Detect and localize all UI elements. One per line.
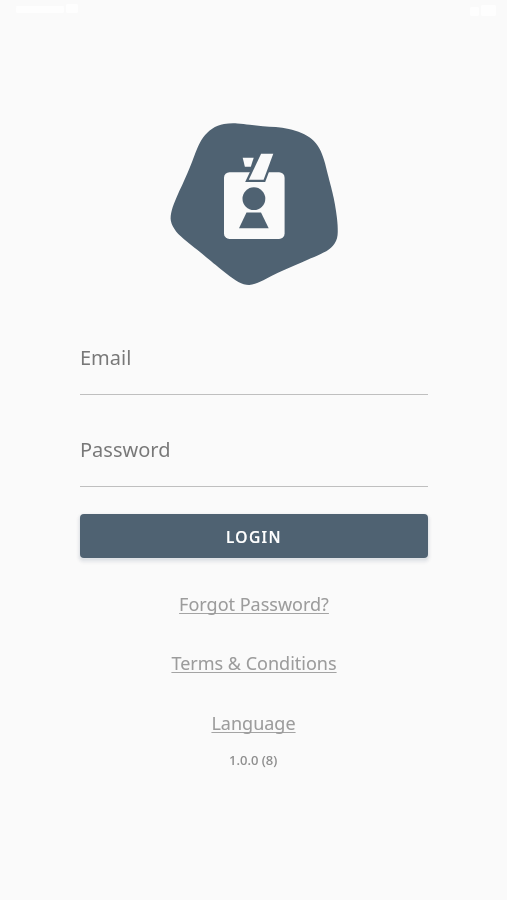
- staticText: 1.0.0 (8): [229, 751, 278, 769]
- button[interactable]: Language: [205, 708, 302, 739]
- staticText: LOGIN: [226, 526, 282, 547]
- button[interactable]: Forgot Password?: [173, 589, 335, 620]
- button[interactable]: LOGIN: [80, 514, 428, 558]
- staticText: Password: [80, 436, 171, 463]
- button[interactable]: Terms & Conditions: [165, 648, 343, 679]
- staticText: Email: [80, 344, 132, 371]
